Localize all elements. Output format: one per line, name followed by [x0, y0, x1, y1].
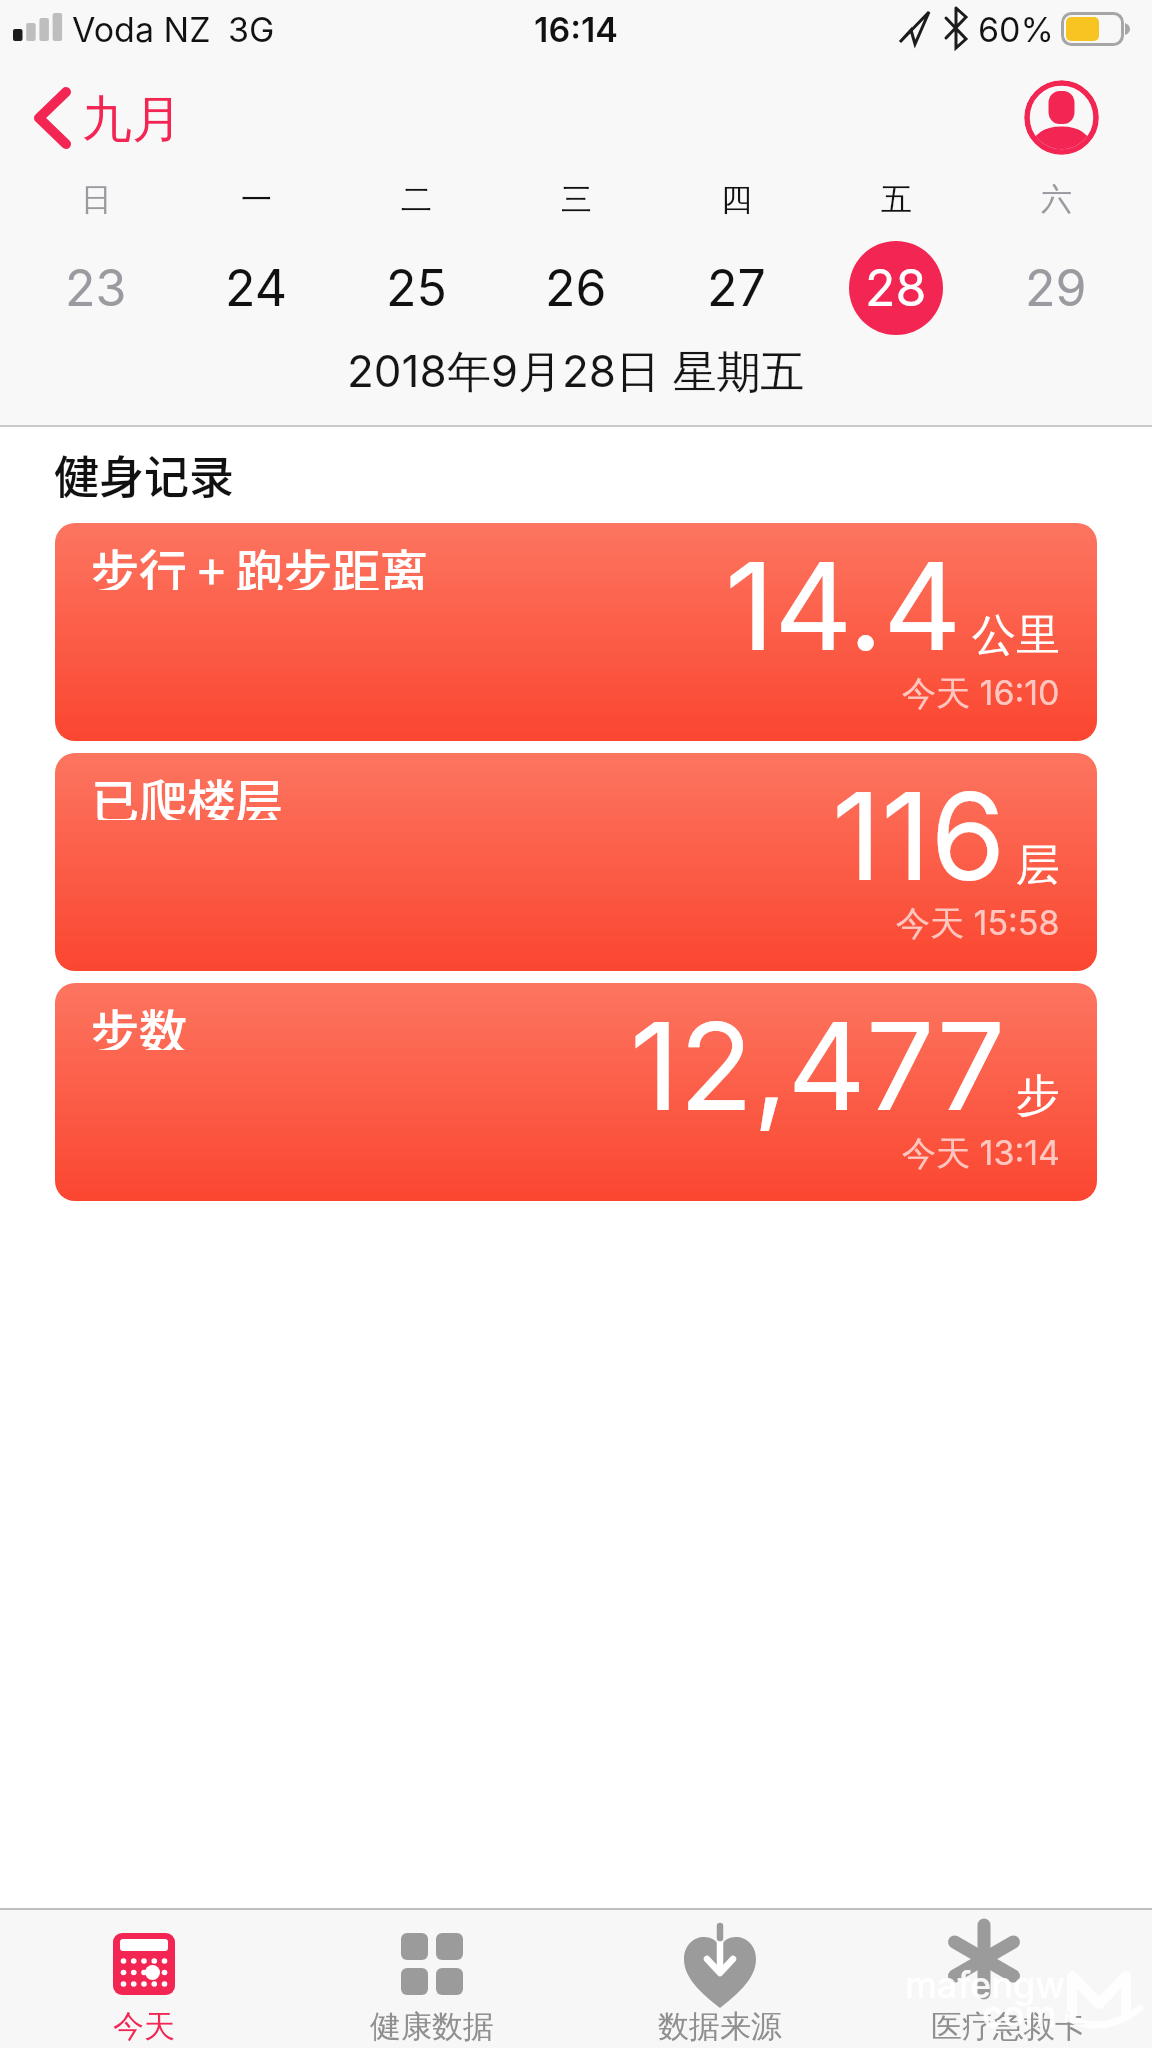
staticText: 公里: [972, 608, 1060, 663]
staticText: 3G: [228, 9, 275, 50]
staticText: 数据来源: [658, 2007, 782, 2046]
staticText: 步行 + 跑步距离: [91, 534, 428, 590]
button[interactable]: 已爬楼层: [55, 753, 1097, 971]
button[interactable]: 25: [336, 240, 496, 336]
staticText: 24: [225, 258, 288, 318]
staticText: 116: [832, 763, 1006, 909]
staticText: 今天 15:58: [896, 902, 1060, 944]
staticText: 26: [545, 258, 607, 318]
button[interactable]: 步行 + 跑步距离: [55, 523, 1097, 741]
button[interactable]: 24: [176, 240, 336, 336]
staticText: 步数: [91, 994, 188, 1050]
staticText: com: [982, 1992, 1057, 2032]
staticText: 健康数据: [370, 2007, 494, 2046]
button[interactable]: [33, 87, 73, 149]
staticText: 14.4: [725, 533, 962, 679]
staticText: 60%: [978, 9, 1054, 50]
staticText: 四: [721, 180, 752, 219]
staticText: 25: [386, 258, 447, 318]
staticText: 16:14: [534, 9, 618, 50]
staticText: 今天: [113, 2007, 175, 2046]
staticText: 层: [1016, 838, 1060, 893]
button[interactable]: 九月: [82, 88, 202, 146]
staticText: 28: [865, 258, 927, 318]
button[interactable]: 26: [496, 240, 656, 336]
staticText: 29: [1025, 258, 1087, 318]
button[interactable]: 步数: [55, 983, 1097, 1201]
staticText: 健身记录: [54, 442, 235, 502]
staticText: 今天 13:14: [902, 1132, 1060, 1174]
staticText: 2018年9月28日 星期五: [347, 344, 805, 396]
staticText: 六: [1041, 180, 1072, 219]
button[interactable]: 29: [976, 240, 1136, 336]
button[interactable]: 28: [816, 240, 976, 336]
button[interactable]: [1024, 80, 1100, 156]
button[interactable]: 健康数据: [288, 1910, 576, 2048]
button[interactable]: 医疗急救卡: [864, 1910, 1152, 2048]
button[interactable]: 23: [16, 240, 176, 336]
staticText: 今天 16:10: [902, 672, 1060, 714]
staticText: 三: [561, 180, 592, 219]
staticText: 日: [81, 180, 112, 219]
button[interactable]: 今天: [0, 1910, 288, 2048]
staticText: 27: [707, 258, 766, 318]
staticText: Voda NZ: [72, 9, 211, 50]
staticText: 九月: [82, 88, 182, 146]
button[interactable]: 27: [656, 240, 816, 336]
staticText: mafengwo: [905, 1963, 1075, 2007]
staticText: 二: [401, 180, 432, 219]
staticText: 步: [1016, 1068, 1060, 1123]
staticText: 一: [241, 180, 272, 219]
staticText: 医疗急救卡: [931, 2007, 1086, 2046]
staticText: 五: [881, 180, 912, 219]
staticText: 12,477: [630, 993, 1006, 1139]
button[interactable]: 数据来源: [576, 1910, 864, 2048]
staticText: 23: [65, 258, 127, 318]
staticText: 已爬楼层: [91, 764, 284, 820]
